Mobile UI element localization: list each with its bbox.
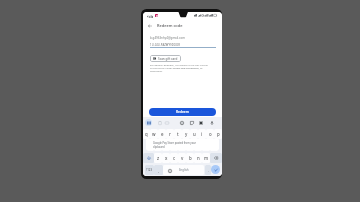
staticText: English [179, 168, 189, 172]
staticText: w [152, 131, 156, 137]
staticText: Redeem [176, 110, 189, 114]
button[interactable]: Emoji [167, 168, 172, 173]
button[interactable]: Settings [198, 120, 204, 126]
button[interactable]: Symbols [145, 165, 154, 175]
staticText: x [165, 155, 168, 161]
button[interactable]: Sticker [189, 120, 195, 126]
staticText: i [201, 131, 203, 137]
button[interactable]: i [198, 129, 206, 139]
button[interactable]: o [206, 129, 214, 139]
button[interactable]: Space [163, 165, 204, 175]
button[interactable]: w [150, 129, 158, 139]
staticText: c [173, 155, 176, 161]
button[interactable]: z [154, 153, 162, 163]
button[interactable]: v [178, 153, 186, 163]
button[interactable]: Voice input [209, 120, 215, 126]
staticText: v [181, 155, 184, 161]
button[interactable]: d [162, 141, 170, 151]
button[interactable]: c [170, 153, 178, 163]
button[interactable]: Back [146, 22, 153, 29]
staticText: b.g4963nhy4@gmail.com [150, 36, 186, 40]
button[interactable]: Google Pay Store pasted from your clipbo… [146, 139, 219, 150]
button[interactable]: Backspace [210, 153, 222, 163]
button[interactable]: Shift [143, 153, 154, 163]
staticText: r [169, 131, 171, 137]
button[interactable]: Gboard menu [145, 119, 152, 126]
staticText: Redeem code [157, 23, 183, 28]
staticText: e [161, 131, 164, 137]
button[interactable]: Enter [211, 165, 220, 174]
button[interactable]: g [178, 141, 186, 151]
button[interactable]: f [170, 141, 178, 151]
button[interactable]: Emoji [179, 120, 185, 126]
staticText: . [208, 168, 209, 173]
button[interactable]: Comma [154, 165, 163, 175]
button[interactable]: Period [205, 165, 211, 175]
button[interactable]: Redeem [149, 108, 216, 116]
staticText: h [189, 143, 192, 149]
button[interactable]: m [202, 153, 210, 163]
staticText: q [145, 131, 148, 137]
staticText: s [157, 143, 160, 149]
staticText: p [217, 131, 220, 137]
button[interactable]: Scan gift card [150, 55, 181, 62]
button[interactable]: x [162, 153, 170, 163]
staticText: b [189, 155, 192, 161]
staticText: g [181, 143, 184, 149]
button[interactable]: h [186, 141, 194, 151]
staticText: d [165, 143, 168, 149]
button[interactable]: u [190, 129, 198, 139]
staticText: m [204, 155, 209, 161]
staticText: By tapping ‘Redeem’, you agree to the Gi… [150, 63, 212, 72]
staticText: o [209, 131, 212, 137]
staticText: z [157, 155, 160, 161]
button[interactable]: t [174, 129, 182, 139]
button[interactable]: j [194, 141, 202, 151]
staticText: Scan gift card [158, 57, 178, 61]
button[interactable]: n [194, 153, 202, 163]
button[interactable]: GIF [164, 120, 170, 126]
staticText: y [185, 131, 188, 137]
staticText: ?123 [146, 168, 153, 172]
button[interactable]: r [166, 129, 174, 139]
staticText: 1U-GIU-PAZWY9DOOR [150, 43, 181, 47]
button[interactable]: y [182, 129, 190, 139]
button[interactable]: e [158, 129, 166, 139]
button[interactable]: b [186, 153, 194, 163]
button[interactable]: s [154, 141, 162, 151]
staticText: , [158, 168, 159, 173]
button[interactable]: p [214, 129, 222, 139]
staticText: u [193, 131, 196, 137]
button[interactable]: Clipboard [157, 120, 163, 126]
staticText: Google Pay Store pasted from your clipbo… [153, 141, 196, 149]
button[interactable]: a [147, 141, 154, 151]
staticText: n [197, 155, 200, 161]
button[interactable]: q [143, 129, 150, 139]
staticText: f [173, 143, 175, 149]
staticText: t [177, 131, 179, 137]
